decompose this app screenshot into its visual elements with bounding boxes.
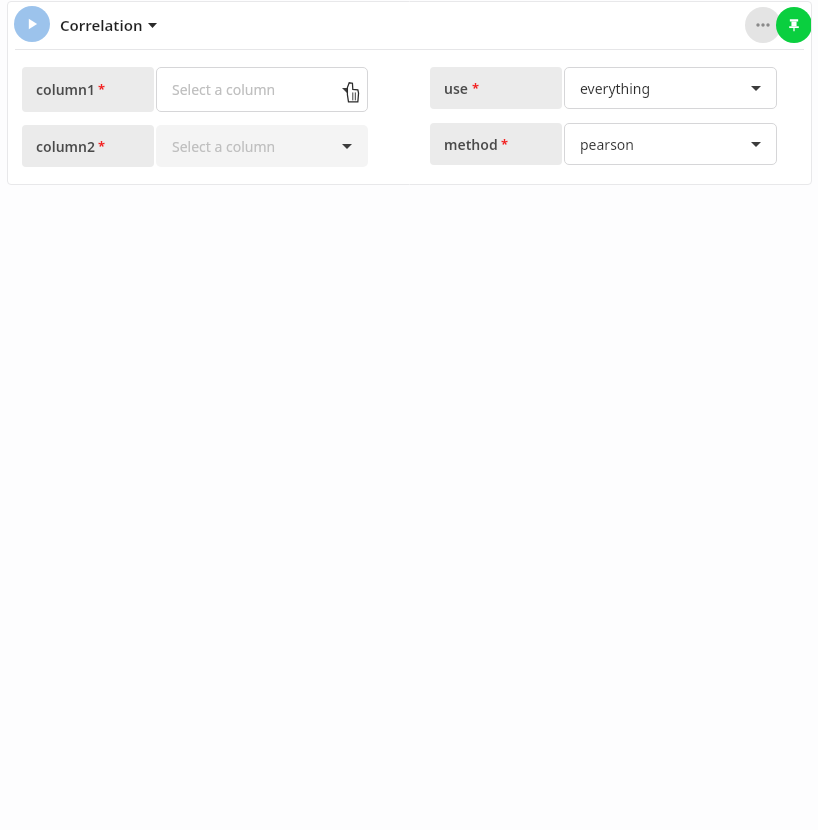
- staticText: method: [444, 135, 498, 154]
- staticText: *: [98, 137, 106, 155]
- button[interactable]: Run: [14, 6, 50, 42]
- staticText: pearson: [580, 135, 634, 154]
- button[interactable]: method: [430, 123, 562, 165]
- button[interactable]: More options: [745, 7, 781, 43]
- button[interactable]: pearson: [564, 123, 777, 165]
- staticText: column2: [36, 137, 95, 156]
- button[interactable]: Pin: [776, 7, 812, 43]
- button[interactable]: everything: [564, 67, 777, 109]
- button[interactable]: column2: [22, 125, 154, 167]
- button[interactable]: use: [430, 67, 562, 109]
- staticText: *: [501, 135, 509, 153]
- staticText: Select a column: [172, 80, 276, 99]
- button[interactable]: Select a column: [156, 125, 368, 167]
- button[interactable]: Select a column: [156, 67, 368, 112]
- button[interactable]: column1: [22, 67, 154, 112]
- button[interactable]: Correlation: [60, 11, 157, 39]
- staticText: *: [98, 80, 106, 98]
- staticText: use: [444, 79, 469, 98]
- staticText: everything: [580, 79, 651, 98]
- staticText: Select a column: [172, 137, 276, 156]
- staticText: *: [472, 79, 480, 97]
- staticText: column1: [36, 80, 95, 99]
- staticText: Correlation: [60, 15, 143, 35]
